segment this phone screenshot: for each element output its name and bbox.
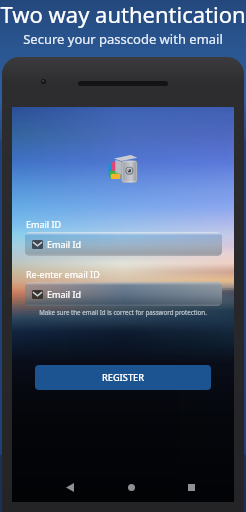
- button[interactable]: REGISTER: [35, 365, 211, 390]
- button[interactable]: Email Id: [25, 232, 222, 256]
- staticText: REGISTER: [102, 371, 144, 384]
- staticText: Email Id: [47, 288, 82, 300]
- staticText: Two way authentication: [0, 0, 246, 29]
- button[interactable]: Back: [58, 475, 82, 499]
- staticText: Make sure the email Id is correct for pa…: [39, 308, 207, 316]
- staticText: Re-enter email ID: [26, 268, 100, 280]
- button[interactable]: Recent apps: [179, 475, 203, 499]
- button[interactable]: Home: [119, 475, 143, 499]
- staticText: Email Id: [47, 238, 82, 250]
- button[interactable]: Email Id: [25, 282, 222, 306]
- staticText: Secure your passcode with email: [23, 30, 223, 48]
- staticText: Email ID: [26, 218, 62, 230]
